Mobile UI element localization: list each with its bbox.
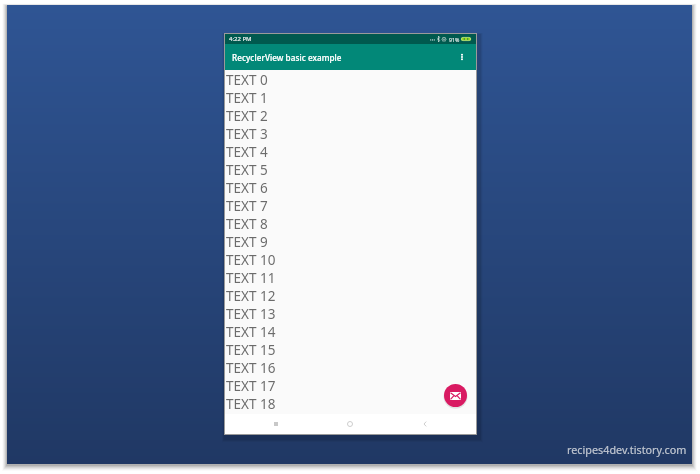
button[interactable]: TEXT 9 xyxy=(225,233,476,251)
button[interactable]: TEXT 3 xyxy=(225,125,476,143)
button[interactable]: TEXT 10 xyxy=(225,251,476,269)
staticText: TEXT 14 xyxy=(226,323,276,341)
staticText: RecyclerView basic example xyxy=(232,52,342,63)
staticText: TEXT 10 xyxy=(226,251,276,269)
button[interactable]: TEXT 16 xyxy=(225,359,476,377)
button[interactable]: Recents xyxy=(266,414,286,434)
staticText: TEXT 9 xyxy=(226,233,268,251)
staticText: TEXT 15 xyxy=(226,341,276,359)
button[interactable]: TEXT 15 xyxy=(225,341,476,359)
button[interactable]: TEXT 11 xyxy=(225,269,476,287)
button[interactable]: TEXT 7 xyxy=(225,197,476,215)
staticText: 4:22 PM xyxy=(229,35,252,43)
button[interactable]: Home xyxy=(340,414,360,434)
button[interactable]: TEXT 14 xyxy=(225,323,476,341)
staticText: TEXT 12 xyxy=(226,287,276,305)
staticText: TEXT 1 xyxy=(226,89,268,107)
button[interactable]: Back xyxy=(415,414,435,434)
button[interactable]: TEXT 0 xyxy=(225,71,476,89)
staticText: TEXT 3 xyxy=(226,125,268,143)
button[interactable]: More options xyxy=(451,46,473,68)
staticText: TEXT 17 xyxy=(226,377,276,395)
staticText: 91% xyxy=(449,36,460,43)
button[interactable]: TEXT 4 xyxy=(225,143,476,161)
button[interactable]: TEXT 1 xyxy=(225,89,476,107)
staticText: TEXT 0 xyxy=(226,71,268,89)
staticText: TEXT 18 xyxy=(226,395,276,413)
button[interactable]: TEXT 18 xyxy=(225,395,476,413)
staticText: TEXT 5 xyxy=(226,161,268,179)
button[interactable]: TEXT 5 xyxy=(225,161,476,179)
staticText: TEXT 16 xyxy=(226,359,276,377)
button[interactable]: TEXT 8 xyxy=(225,215,476,233)
staticText: TEXT 11 xyxy=(226,269,276,287)
staticText: TEXT 6 xyxy=(226,179,268,197)
button[interactable]: TEXT 6 xyxy=(225,179,476,197)
staticText: TEXT 13 xyxy=(226,305,276,323)
button[interactable]: TEXT 17 xyxy=(225,377,476,395)
button[interactable]: TEXT 2 xyxy=(225,107,476,125)
button[interactable]: TEXT 13 xyxy=(225,305,476,323)
staticText: recipes4dev.tistory.com xyxy=(567,442,687,457)
staticText: TEXT 8 xyxy=(226,215,268,233)
button[interactable]: TEXT 12 xyxy=(225,287,476,305)
staticText: TEXT 7 xyxy=(226,197,268,215)
staticText: TEXT 2 xyxy=(226,107,268,125)
button[interactable]: Compose email xyxy=(444,384,467,407)
staticText: TEXT 4 xyxy=(226,143,268,161)
